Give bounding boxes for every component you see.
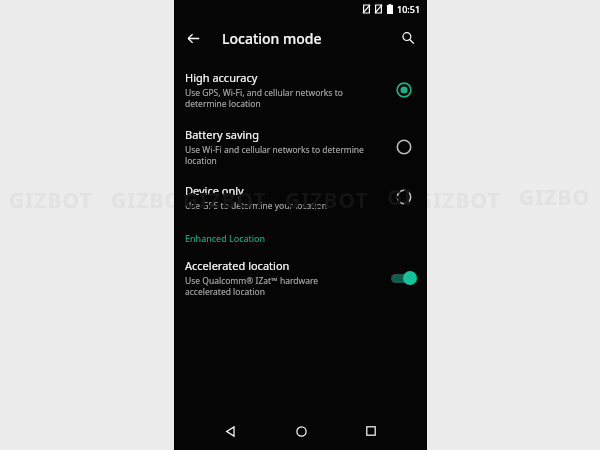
staticText: GIZBOT bbox=[387, 183, 418, 217]
staticText: Use GPS to determine your location bbox=[185, 200, 328, 212]
button[interactable]: High accuracy bbox=[174, 70, 427, 109]
button[interactable]: Search bbox=[395, 25, 421, 51]
button[interactable]: Home bbox=[286, 416, 316, 446]
button[interactable]: Back bbox=[215, 416, 245, 446]
staticText: GIZBOT bbox=[519, 183, 591, 217]
staticText: GIZBOT bbox=[315, 186, 399, 215]
button[interactable]: Battery saving bbox=[174, 127, 427, 166]
staticText: Location mode bbox=[222, 29, 322, 48]
staticText: Use Wi-Fi and cellular networks to deter… bbox=[185, 144, 364, 166]
button[interactable]: Accelerated location bbox=[174, 258, 427, 297]
staticText: GIZBOT bbox=[183, 186, 267, 215]
staticText: GIZBOT bbox=[285, 186, 369, 215]
staticText: Accelerated location bbox=[185, 258, 290, 273]
staticText: 10:51 bbox=[397, 3, 421, 15]
staticText: Enhanced Location bbox=[185, 232, 266, 244]
button[interactable]: Recent apps bbox=[356, 416, 386, 446]
staticText: GIZBOT bbox=[9, 186, 93, 215]
staticText: High accuracy bbox=[185, 70, 258, 85]
staticText: GIZBOT bbox=[417, 186, 501, 215]
staticText: Device only bbox=[185, 183, 244, 198]
staticText: Use GPS, Wi-Fi, and cellular networks to… bbox=[185, 87, 343, 109]
button[interactable]: Back bbox=[180, 25, 206, 51]
staticText: GIZBOT bbox=[213, 186, 297, 215]
button[interactable]: Device only bbox=[174, 182, 427, 212]
staticText: GIZBOT bbox=[111, 186, 195, 215]
staticText: Battery saving bbox=[185, 127, 259, 142]
staticText: Use Qualcomm® IZat™ hardware accelerated… bbox=[185, 275, 319, 297]
